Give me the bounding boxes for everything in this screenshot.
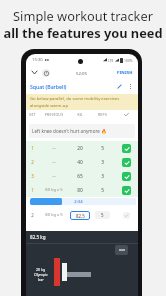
staticText: 2 — [26, 159, 39, 165]
button[interactable]: Squat (Barbell) — [30, 83, 67, 90]
staticText: alongside warm-up — [30, 103, 69, 109]
button[interactable]: Unit — [115, 245, 128, 255]
staticText: FINISH — [117, 70, 133, 76]
button[interactable]: Left knee doesn't hurt anymore 🔥 — [29, 124, 135, 138]
button[interactable]: 1 — [26, 183, 138, 197]
staticText: REPS — [91, 112, 114, 117]
staticText: all the features you need — [3, 24, 163, 41]
button[interactable]: 82.5 — [70, 211, 90, 220]
staticText: 2:34 — [67, 199, 90, 205]
button[interactable]: 3 — [26, 169, 138, 183]
staticText: 20 kg — [36, 267, 46, 272]
staticText: 80 kg x 5 — [39, 187, 69, 193]
staticText: 3 — [91, 159, 114, 166]
staticText: 2 — [26, 212, 39, 218]
staticText: 80 kg x 5 — [39, 212, 69, 218]
staticText: Simple workout tracker — [13, 7, 153, 24]
staticText: 1 — [26, 145, 39, 151]
button[interactable]: 5 — [95, 211, 110, 219]
button[interactable]: Edit exercise — [114, 81, 125, 92]
staticText: 20 — [69, 145, 91, 152]
staticText: 3 — [26, 173, 39, 179]
staticText: SET — [26, 112, 39, 117]
staticText: 82.5 kg — [30, 234, 46, 240]
staticText: bar — [38, 277, 44, 282]
staticText: — — [39, 145, 69, 151]
staticText: Go below parallel, do some mobility exer… — [30, 96, 120, 102]
button[interactable]: 82.5 kg — [28, 232, 48, 242]
staticText: — — [39, 159, 69, 165]
staticText: 3 — [91, 173, 114, 180]
button[interactable]: 2 — [26, 155, 138, 169]
button[interactable]: FINISH — [115, 68, 135, 78]
staticText: 40 — [69, 159, 91, 166]
button[interactable]: Rest timer — [41, 68, 51, 78]
staticText: 15:30 — [32, 57, 43, 63]
staticText: 82.5 — [76, 213, 85, 219]
staticText: 100% — [124, 58, 133, 63]
staticText: 5 — [101, 212, 104, 218]
button[interactable]: 1 — [26, 141, 138, 155]
staticText: Left knee doesn't hurt anymore 🔥 — [32, 128, 107, 134]
staticText: Olympic — [34, 272, 48, 277]
staticText: LTE — [108, 58, 114, 63]
staticText: 1 — [26, 187, 39, 193]
staticText: 80 — [69, 187, 91, 194]
staticText: 65 — [69, 173, 91, 180]
staticText: 5 — [91, 187, 114, 194]
button[interactable]: Collapse — [29, 67, 40, 78]
staticText: — — [39, 173, 69, 179]
staticText: KG — [69, 112, 91, 117]
button[interactable]: Complete set — [123, 212, 130, 219]
button[interactable]: More options — [125, 81, 136, 92]
staticText: 52:05 — [76, 70, 87, 76]
staticText: PREVIOUS — [39, 112, 69, 117]
staticText: 5 — [91, 145, 114, 152]
